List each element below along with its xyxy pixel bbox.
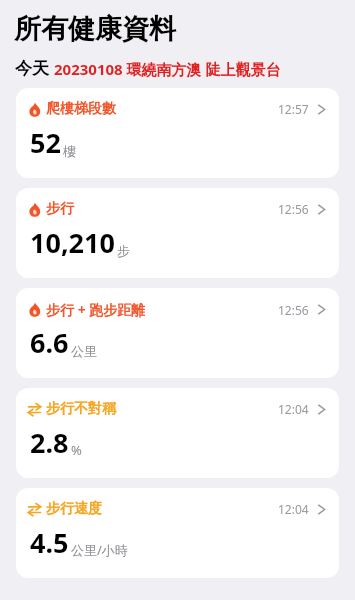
staticText: 樓 [63, 143, 76, 159]
button[interactable]: 步行 + 跑步距離 [16, 288, 339, 378]
staticText: 今天 [15, 58, 49, 79]
staticText: 12:04 [278, 501, 309, 517]
staticText: 10,210 [30, 224, 115, 261]
staticText: 步行速度 [46, 500, 102, 518]
staticText: 6.6 [30, 324, 69, 361]
staticText: 12:04 [278, 401, 309, 417]
staticText: 公里/小時 [71, 541, 128, 559]
button[interactable]: 步行 [16, 188, 339, 278]
staticText: 公里 [71, 343, 97, 359]
staticText: 12:56 [278, 302, 309, 318]
staticText: 所有健康資料 [14, 12, 176, 46]
staticText: 12:56 [278, 201, 309, 217]
staticText: % [71, 441, 82, 459]
staticText: 52 [30, 124, 61, 161]
staticText: 4.5 [30, 524, 69, 561]
staticText: 12:57 [278, 101, 309, 117]
staticText: 步行 + 跑步距離 [46, 300, 146, 319]
button[interactable]: 步行不對稱 [16, 388, 339, 478]
staticText: 步行不對稱 [46, 400, 116, 418]
staticText: 2.8 [30, 424, 69, 461]
staticText: 20230108 環繞南方澳 陡上觀景台 [54, 59, 281, 79]
staticText: 步行 [46, 200, 74, 218]
staticText: 爬樓梯段數 [46, 100, 116, 118]
button[interactable]: 步行速度 [16, 488, 339, 578]
staticText: 步 [117, 243, 130, 259]
button[interactable]: 爬樓梯段數 [16, 88, 339, 178]
